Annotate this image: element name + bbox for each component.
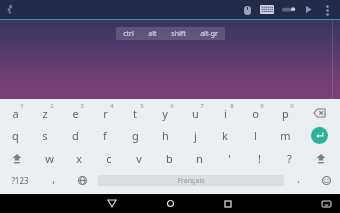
button[interactable]: ctrl: [116, 27, 141, 40]
staticText: 9: [260, 102, 264, 110]
button[interactable]: alt-gr: [193, 27, 225, 40]
button[interactable]: 2: [30, 101, 60, 124]
staticText: 3: [80, 102, 84, 110]
staticText: h: [162, 128, 169, 143]
staticText: Français: [177, 176, 205, 186]
staticText: e: [72, 106, 79, 121]
staticText: y: [162, 106, 168, 121]
staticText: d: [72, 128, 79, 143]
staticText: n: [196, 151, 203, 166]
button[interactable]: Backspace: [300, 101, 338, 124]
button[interactable]: Change language: [67, 170, 97, 191]
staticText: j: [194, 128, 197, 143]
button[interactable]: .: [285, 170, 312, 191]
staticText: l: [254, 128, 257, 143]
staticText: g: [132, 128, 139, 143]
staticText: 0: [290, 102, 294, 110]
button[interactable]: shift: [164, 27, 193, 40]
button[interactable]: 5: [120, 101, 150, 124]
button[interactable]: App logo: [6, 4, 17, 15]
staticText: t: [133, 106, 137, 121]
button[interactable]: Emoji: [312, 170, 340, 191]
staticText: alt: [148, 29, 157, 39]
button[interactable]: x: [64, 147, 94, 170]
staticText: 5: [140, 102, 144, 110]
button[interactable]: 1: [0, 101, 30, 124]
staticText: a: [12, 106, 19, 121]
button[interactable]: s: [30, 124, 60, 147]
staticText: i: [224, 106, 227, 121]
staticText: ,: [52, 172, 55, 186]
staticText: f: [103, 128, 107, 143]
staticText: z: [42, 106, 48, 121]
button[interactable]: 7: [180, 101, 210, 124]
button[interactable]: n: [184, 147, 214, 170]
staticText: alt-gr: [200, 29, 218, 39]
staticText: 1: [20, 102, 24, 110]
button[interactable]: ': [214, 147, 244, 170]
button[interactable]: v: [124, 147, 154, 170]
button[interactable]: j: [180, 124, 210, 147]
staticText: 2: [50, 102, 54, 110]
staticText: b: [166, 151, 173, 166]
button[interactable]: 8: [210, 101, 240, 124]
button[interactable]: 0: [270, 101, 300, 124]
button[interactable]: Mouse: [238, 1, 256, 19]
staticText: r: [103, 106, 108, 121]
staticText: c: [106, 151, 112, 166]
staticText: ': [228, 151, 231, 166]
button[interactable]: g: [120, 124, 150, 147]
staticText: o: [252, 106, 259, 121]
button[interactable]: alt: [141, 27, 164, 40]
button[interactable]: 4: [90, 101, 120, 124]
button[interactable]: b: [154, 147, 184, 170]
button[interactable]: h: [150, 124, 180, 147]
staticText: 7: [200, 102, 204, 110]
button[interactable]: k: [210, 124, 240, 147]
button[interactable]: d: [60, 124, 90, 147]
button[interactable]: !: [244, 147, 274, 170]
button[interactable]: 6: [150, 101, 180, 124]
staticText: q: [12, 128, 19, 143]
button[interactable]: Gamepad: [278, 0, 298, 19]
staticText: p: [282, 106, 289, 121]
button[interactable]: 3: [60, 101, 90, 124]
button[interactable]: f: [90, 124, 120, 147]
staticText: u: [192, 106, 199, 121]
staticText: s: [42, 128, 48, 143]
staticText: ?: [287, 151, 292, 166]
staticText: 8: [230, 102, 234, 110]
staticText: !: [258, 151, 261, 166]
button[interactable]: l: [240, 124, 270, 147]
staticText: v: [136, 151, 142, 166]
button[interactable]: m: [270, 124, 300, 147]
button[interactable]: Français: [98, 175, 284, 186]
button[interactable]: Home: [155, 194, 185, 213]
button[interactable]: ?123: [0, 170, 40, 191]
button[interactable]: Recent apps: [213, 194, 243, 213]
button[interactable]: q: [0, 124, 30, 147]
button[interactable]: Run: [298, 0, 318, 19]
staticText: .: [297, 172, 300, 186]
button[interactable]: ?: [274, 147, 304, 170]
button[interactable]: Hide keyboard: [318, 196, 334, 212]
staticText: w: [45, 151, 54, 166]
staticText: 6: [170, 102, 174, 110]
button[interactable]: ,: [40, 170, 67, 191]
staticText: 4: [110, 102, 114, 110]
staticText: k: [222, 128, 228, 143]
button[interactable]: Enter: [300, 124, 338, 147]
staticText: ?123: [11, 175, 29, 186]
staticText: shift: [171, 29, 186, 39]
button[interactable]: Back: [97, 194, 127, 213]
button[interactable]: Shift: [304, 147, 338, 170]
button[interactable]: Shift: [0, 147, 34, 170]
staticText: x: [76, 151, 82, 166]
button[interactable]: Keyboard: [256, 0, 278, 19]
staticText: ctrl: [123, 29, 134, 39]
staticText: m: [280, 128, 291, 143]
button[interactable]: w: [34, 147, 64, 170]
button[interactable]: More options: [318, 1, 336, 19]
button[interactable]: c: [94, 147, 124, 170]
button[interactable]: 9: [240, 101, 270, 124]
